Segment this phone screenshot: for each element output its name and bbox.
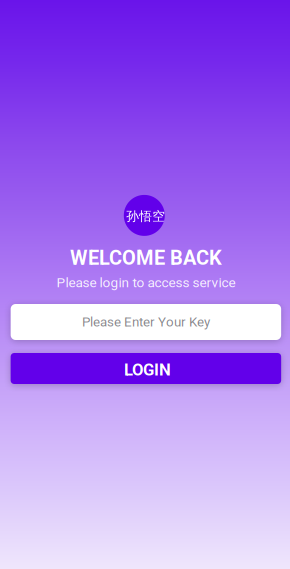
button[interactable]: LOGIN <box>11 353 281 384</box>
staticText: Please Enter Your Key <box>82 314 210 330</box>
staticText: 孙悟空 <box>126 208 165 224</box>
button[interactable]: Please Enter Your Key <box>11 304 281 340</box>
staticText: LOGIN <box>124 360 171 379</box>
staticText: WELCOME BACK <box>70 246 222 270</box>
staticText: Please login to access service <box>56 274 235 290</box>
